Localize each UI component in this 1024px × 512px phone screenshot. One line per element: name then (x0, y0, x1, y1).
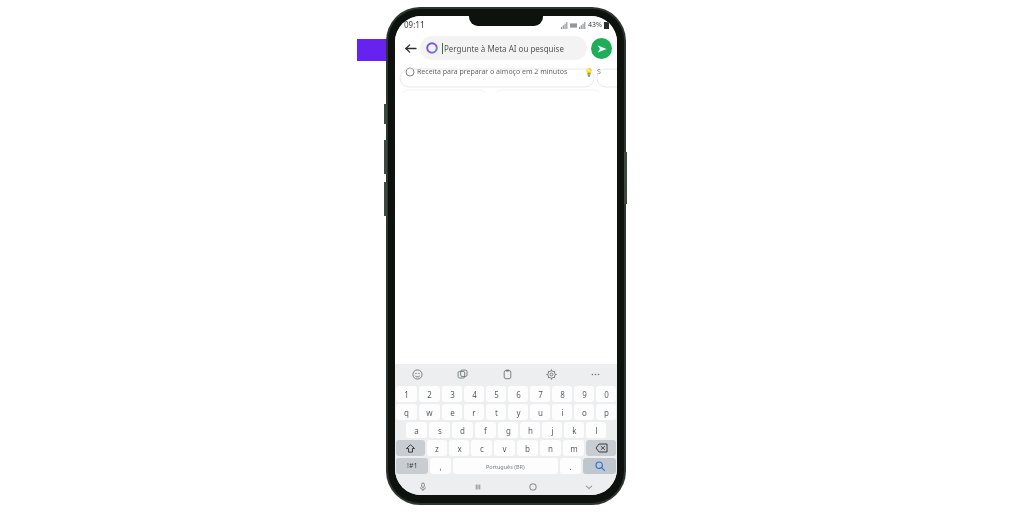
staticText: 7 (538, 389, 543, 400)
staticText: e (450, 407, 455, 418)
staticText: l (595, 425, 598, 436)
button[interactable]: z (427, 440, 447, 456)
button[interactable]: Fechar teclado (561, 478, 617, 495)
staticText: 09:11 (404, 19, 425, 30)
staticText: 5 (494, 389, 499, 400)
staticText: a (414, 425, 419, 436)
staticText: r (472, 407, 476, 418)
button[interactable]: 0 (596, 386, 616, 402)
staticText: d (460, 425, 465, 436)
staticText: . (569, 461, 572, 472)
staticText: x (457, 443, 462, 454)
button[interactable]: , (430, 458, 451, 474)
button[interactable]: d (452, 422, 473, 438)
staticText: 1 (404, 389, 409, 400)
button[interactable]: 6 (508, 386, 528, 402)
button[interactable]: m (563, 440, 584, 456)
staticText: Pergunte à Meta AI ou pesquise (444, 43, 564, 54)
button[interactable]: 8 (552, 386, 572, 402)
staticText: 0 (604, 389, 609, 400)
button[interactable]: x (449, 440, 469, 456)
staticText: 3 (450, 389, 455, 400)
button[interactable]: j (542, 422, 562, 438)
button[interactable]: Receita para preparar o almoço em 2 minu… (400, 63, 574, 81)
button[interactable]: 3 (442, 386, 462, 402)
button[interactable]: i (552, 404, 572, 420)
staticText: p (604, 407, 609, 418)
staticText: w (426, 407, 433, 418)
button[interactable]: k (564, 422, 584, 438)
staticText: t (495, 407, 498, 418)
button[interactable]: Configurações (529, 364, 573, 384)
button[interactable]: Português (BR) (453, 458, 558, 474)
button[interactable]: a (406, 422, 427, 438)
button[interactable]: v (494, 440, 515, 456)
staticText: !#1 (407, 461, 418, 471)
staticText: Português (BR) (486, 463, 525, 470)
button[interactable]: 2 (419, 386, 440, 402)
button[interactable]: !#1 (396, 458, 428, 474)
button[interactable]: Enviar (591, 38, 612, 59)
button[interactable]: Shift (396, 440, 425, 456)
button[interactable]: Mais (573, 364, 617, 384)
staticText: 💡 (584, 68, 594, 77)
staticText: h (528, 425, 533, 436)
button[interactable]: f (475, 422, 496, 438)
staticText: , (439, 461, 442, 472)
staticText: j (551, 425, 554, 436)
button[interactable]: 💡 (578, 63, 607, 81)
button[interactable]: 4 (464, 386, 484, 402)
staticText: o (582, 407, 587, 418)
button[interactable]: Apagar (586, 440, 616, 456)
button[interactable]: Emoji (395, 364, 440, 384)
button[interactable]: q (396, 404, 417, 420)
staticText: n (548, 443, 553, 454)
button[interactable]: 5 (486, 386, 506, 402)
staticText: u (538, 407, 543, 418)
button[interactable]: Pesquisar (583, 458, 616, 474)
button[interactable]: p (596, 404, 616, 420)
staticText: b (525, 443, 530, 454)
button[interactable]: e (442, 404, 462, 420)
button[interactable]: 1 (396, 386, 417, 402)
button[interactable]: 9 (574, 386, 594, 402)
button[interactable]: s (429, 422, 450, 438)
button[interactable]: Microfone (395, 478, 450, 495)
button[interactable]: u (530, 404, 550, 420)
button[interactable]: Área de transferência (485, 364, 529, 384)
staticText: v (502, 443, 507, 454)
staticText: 9 (582, 389, 587, 400)
button[interactable]: c (471, 440, 492, 456)
staticText: g (506, 425, 511, 436)
button[interactable]: t (486, 404, 506, 420)
staticText: c (480, 443, 484, 454)
staticText: f (484, 425, 487, 436)
button[interactable]: g (498, 422, 518, 438)
staticText: q (404, 407, 409, 418)
button[interactable]: r (464, 404, 484, 420)
staticText: 6 (516, 389, 521, 400)
staticText: y (516, 407, 521, 418)
button[interactable]: Figurinhas (440, 364, 485, 384)
button[interactable]: 7 (530, 386, 550, 402)
button[interactable]: h (520, 422, 540, 438)
button[interactable]: Pergunte à Meta AI ou pesquise (420, 36, 587, 60)
button[interactable]: . (560, 458, 581, 474)
button[interactable]: o (574, 404, 594, 420)
button[interactable]: y (508, 404, 528, 420)
button[interactable]: Voltar (400, 38, 420, 58)
staticText: 2 (427, 389, 432, 400)
button[interactable]: w (419, 404, 440, 420)
staticText: Receita para preparar o almoço em 2 minu… (417, 67, 568, 77)
staticText: m (570, 443, 578, 454)
staticText: i (561, 407, 564, 418)
button[interactable]: l (586, 422, 606, 438)
staticText: 43% (588, 20, 602, 30)
button[interactable]: Início (505, 478, 561, 495)
staticText: S (597, 67, 601, 77)
staticText: z (435, 443, 439, 454)
button[interactable]: Recentes (450, 478, 505, 495)
staticText: 8 (560, 389, 565, 400)
button[interactable]: n (540, 440, 561, 456)
button[interactable]: b (517, 440, 538, 456)
